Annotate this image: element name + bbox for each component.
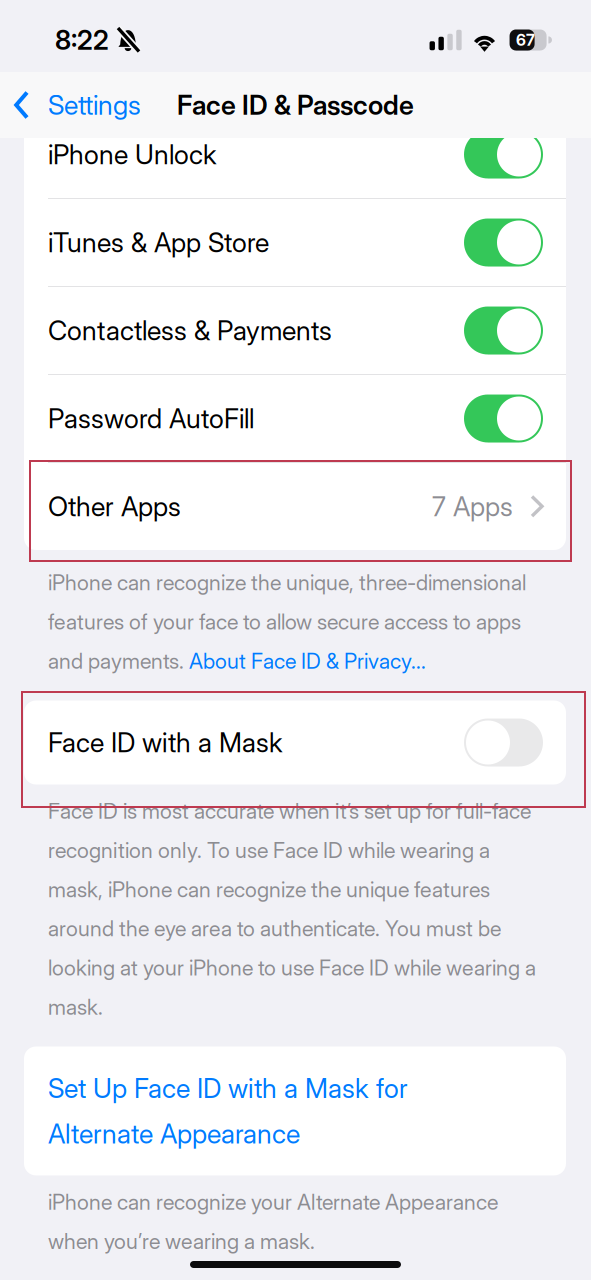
- button[interactable]: Password AutoFill: [24, 375, 566, 462]
- staticText: mask, iPhone can recognize the unique fe…: [48, 877, 490, 902]
- button[interactable]: Other Apps: [24, 463, 566, 550]
- staticText: iPhone Unlock: [48, 139, 217, 170]
- button[interactable]: Contactless & Payments: [24, 287, 566, 374]
- staticText: Settings: [48, 89, 141, 121]
- staticText: features of your face to allow secure ac…: [48, 609, 521, 634]
- staticText: Other Apps: [48, 491, 181, 522]
- staticText: recognition only. To use Face ID while w…: [48, 838, 490, 863]
- button[interactable]: Set Up Face ID with a Mask for: [24, 1046, 566, 1175]
- button[interactable]: iPhone Unlock: [24, 111, 566, 198]
- button[interactable]: Face ID with a Mask: [24, 700, 566, 784]
- staticText: Face ID with a Mask: [48, 727, 283, 758]
- staticText: About Face ID & Privacy...: [189, 648, 426, 673]
- staticText: 7 Apps: [432, 491, 513, 522]
- staticText: iPhone can recognize your Alternate Appe…: [48, 1189, 498, 1215]
- staticText: iPhone can recognize the unique, three-d…: [48, 570, 526, 595]
- button[interactable]: Settings: [0, 72, 220, 138]
- staticText: and payments.: [48, 648, 189, 673]
- staticText: looking at your iPhone to use Face ID wh…: [48, 955, 536, 980]
- staticText: around the eye area to authenticate. You…: [48, 916, 501, 941]
- staticText: 8:22: [55, 24, 109, 56]
- staticText: Contactless & Payments: [48, 315, 332, 346]
- staticText: mask.: [48, 994, 103, 1019]
- button[interactable]: About Face ID & Privacy...: [189, 648, 426, 673]
- button[interactable]: iTunes & App Store: [24, 199, 566, 286]
- staticText: Face ID is most accurate when it’s set u…: [48, 798, 531, 824]
- staticText: iTunes & App Store: [48, 227, 269, 258]
- staticText: Face ID & Passcode: [177, 89, 414, 121]
- staticText: 67: [516, 31, 535, 49]
- staticText: Set Up Face ID with a Mask for: [48, 1072, 408, 1104]
- staticText: Password AutoFill: [48, 403, 254, 434]
- staticText: when you’re wearing a mask.: [48, 1229, 315, 1254]
- staticText: Alternate Appearance: [48, 1118, 300, 1149]
